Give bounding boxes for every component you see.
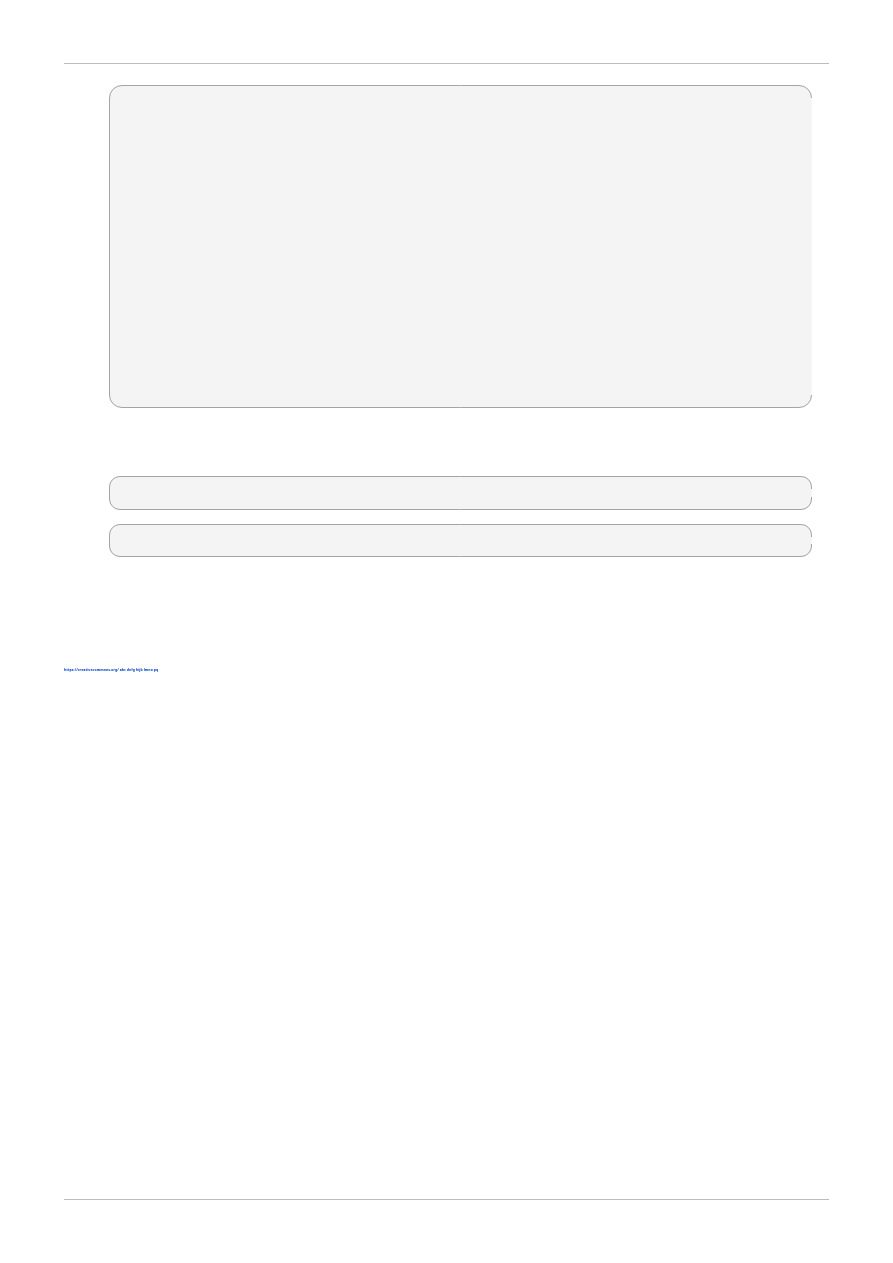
button[interactable]: https://creativecommons.org/ abc defg hi… bbox=[64, 667, 159, 672]
button[interactable]: Figure bbox=[109, 85, 812, 408]
button[interactable]: Field one bbox=[109, 476, 812, 510]
button[interactable]: Field two bbox=[109, 524, 812, 557]
